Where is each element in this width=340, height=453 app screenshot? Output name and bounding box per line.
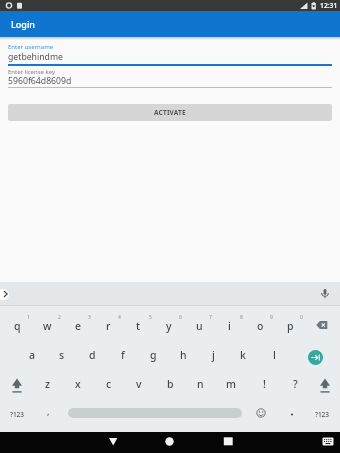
button[interactable]: ACTIVATE <box>8 104 332 121</box>
button[interactable] <box>68 408 242 418</box>
button[interactable]: 5 <box>138 308 162 326</box>
button[interactable]: h <box>171 346 195 364</box>
button[interactable]: 2 <box>47 308 71 326</box>
staticText: , <box>47 405 50 417</box>
staticText: 6 <box>179 314 182 321</box>
button[interactable]: r <box>96 317 120 335</box>
staticText: b <box>167 377 174 391</box>
button[interactable]: 8 <box>229 308 253 326</box>
button[interactable] <box>318 432 338 453</box>
button[interactable]: n <box>188 375 212 393</box>
staticText: n <box>197 377 204 391</box>
staticText: e <box>75 319 82 333</box>
button[interactable] <box>253 405 269 421</box>
button[interactable]: l <box>262 346 286 364</box>
button[interactable]: o <box>248 317 272 335</box>
button[interactable]: k <box>231 346 255 364</box>
staticText: s <box>59 348 65 362</box>
staticText: 12:31 <box>320 1 338 10</box>
button[interactable]: y <box>157 317 181 335</box>
button[interactable]: , <box>36 402 60 420</box>
staticText: a <box>29 348 36 362</box>
button[interactable]: i <box>217 317 241 335</box>
button[interactable]: t <box>126 317 150 335</box>
button[interactable]: ? <box>283 375 307 393</box>
button[interactable]: e <box>66 317 90 335</box>
button[interactable]: 3 <box>77 308 101 326</box>
staticText: q <box>14 319 21 333</box>
button[interactable]: 4 <box>107 308 131 326</box>
button[interactable]: 6 <box>168 308 192 326</box>
button[interactable] <box>103 432 123 453</box>
button[interactable] <box>308 350 323 365</box>
staticText: 5960f64d8609d <box>8 75 72 87</box>
staticText: g <box>150 348 157 362</box>
button[interactable] <box>315 374 335 394</box>
button[interactable]: j <box>201 346 225 364</box>
staticText: y <box>166 319 172 333</box>
button[interactable] <box>7 374 27 394</box>
staticText: ? <box>293 377 298 391</box>
button[interactable]: x <box>66 375 90 393</box>
button[interactable]: a <box>20 346 44 364</box>
button[interactable] <box>160 432 180 453</box>
staticText: 5 <box>149 314 152 321</box>
staticText: x <box>75 377 81 391</box>
button[interactable]: v <box>127 375 151 393</box>
staticText: o <box>257 319 264 333</box>
button[interactable]: z <box>36 375 60 393</box>
staticText: t <box>136 319 141 333</box>
staticText: d <box>89 348 96 362</box>
staticText: 9 <box>270 314 273 321</box>
staticText: 8 <box>240 314 243 321</box>
staticText: ACTIVATE <box>154 108 186 117</box>
button[interactable]: f <box>111 346 135 364</box>
button[interactable]: ! <box>252 375 276 393</box>
button[interactable]: 9 <box>259 308 283 326</box>
staticText: u <box>196 319 203 333</box>
button[interactable]: q <box>5 317 29 335</box>
button[interactable]: u <box>187 317 211 335</box>
staticText: Enter username <box>8 43 54 51</box>
staticText: j <box>212 348 215 362</box>
button[interactable]: ?123 <box>5 405 29 423</box>
staticText: 7 <box>209 314 212 321</box>
staticText: c <box>106 377 112 391</box>
staticText: w <box>43 319 52 333</box>
button[interactable]: g <box>141 346 165 364</box>
button[interactable]: w <box>35 317 59 335</box>
button[interactable]: b <box>158 375 182 393</box>
staticText: 0 <box>300 314 303 321</box>
staticText: k <box>240 348 246 362</box>
staticText: Enter license key <box>8 68 56 76</box>
button[interactable] <box>217 432 237 453</box>
staticText: 3 <box>88 314 91 321</box>
staticText: z <box>45 377 51 391</box>
staticText: 4 <box>118 314 121 321</box>
button[interactable]: m <box>219 375 243 393</box>
button[interactable]: c <box>97 375 121 393</box>
button[interactable]: 7 <box>198 308 222 326</box>
button[interactable] <box>310 315 334 335</box>
button[interactable]: ?123 <box>310 405 334 423</box>
staticText: h <box>180 348 187 362</box>
staticText: v <box>136 377 142 391</box>
staticText: 2 <box>58 314 61 321</box>
staticText: ! <box>263 377 266 391</box>
button[interactable]: p <box>278 317 302 335</box>
staticText: ?123 <box>315 410 330 419</box>
staticText: l <box>273 348 276 362</box>
button[interactable]: s <box>50 346 74 364</box>
staticText: m <box>226 377 236 391</box>
staticText: Login <box>11 18 35 30</box>
button[interactable] <box>0 289 9 300</box>
button[interactable]: 1 <box>16 308 40 326</box>
staticText: f <box>121 348 125 362</box>
button[interactable]: d <box>80 346 104 364</box>
button[interactable]: 0 <box>289 308 313 326</box>
staticText: p <box>287 319 294 333</box>
button[interactable] <box>315 286 335 302</box>
staticText: i <box>228 319 231 333</box>
